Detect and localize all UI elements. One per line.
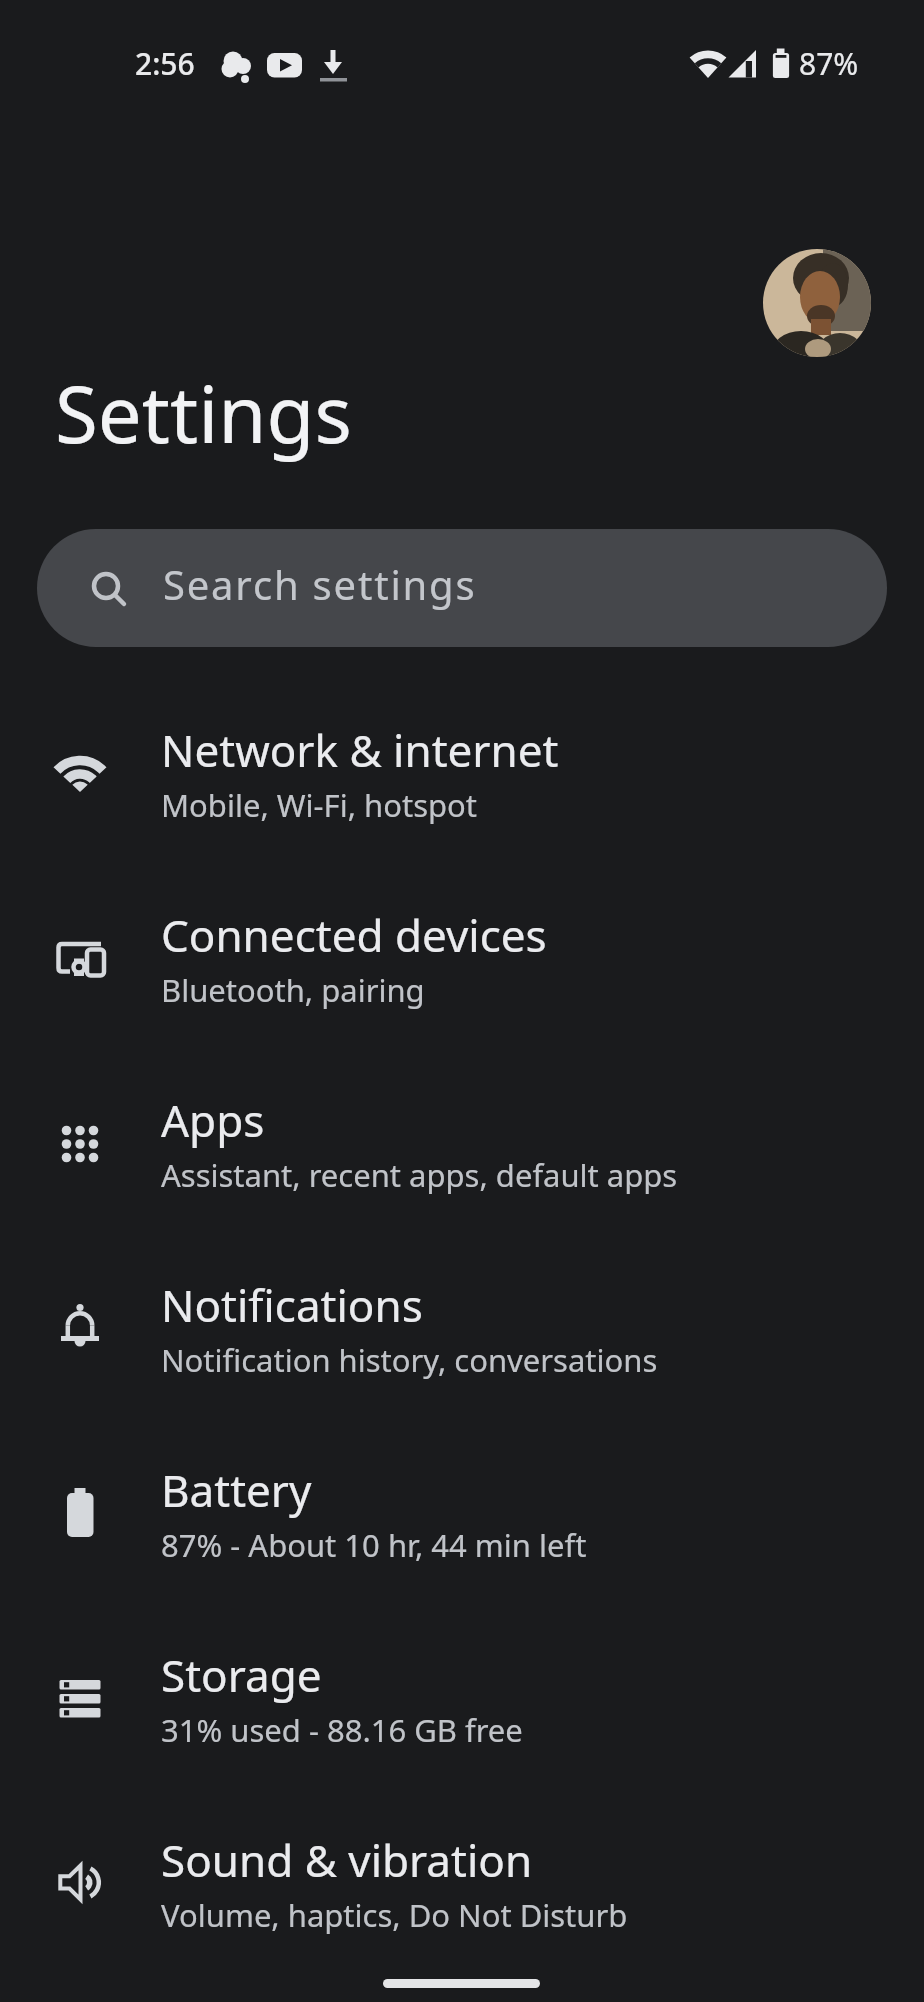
button[interactable]: Connected devices [0,867,924,1052]
button[interactable]: Storage [0,1607,924,1792]
button[interactable]: Notifications [0,1237,924,1422]
button[interactable] [763,249,871,357]
staticText: Bluetooth, pairing [161,969,425,1011]
staticText: Mobile, Wi-Fi, hotspot [161,784,478,826]
staticText: 87% - About 10 hr, 44 min left [161,1524,587,1566]
staticText: Network & internet [161,720,559,780]
staticText: 31% used - 88.16 GB free [161,1709,523,1751]
staticText: Sound & vibration [161,1830,533,1890]
button[interactable]: Network & internet [0,682,924,867]
staticText: Assistant, recent apps, default apps [161,1154,678,1196]
staticText: Search settings [163,557,477,611]
button[interactable]: Sound & vibration [0,1792,924,1977]
staticText: 2:56 [135,43,195,84]
button[interactable]: Battery [0,1422,924,1607]
staticText: Notifications [161,1275,423,1335]
staticText: Connected devices [161,905,547,965]
staticText: Settings [55,360,352,466]
staticText: Battery [161,1460,312,1520]
staticText: Apps [161,1090,265,1150]
button[interactable]: Apps [0,1052,924,1237]
staticText: Notification history, conversations [161,1339,658,1381]
staticText: Storage [161,1645,322,1705]
staticText: 87% [799,43,859,84]
button[interactable]: Search settings [37,529,887,647]
staticText: Volume, haptics, Do Not Disturb [161,1894,628,1936]
